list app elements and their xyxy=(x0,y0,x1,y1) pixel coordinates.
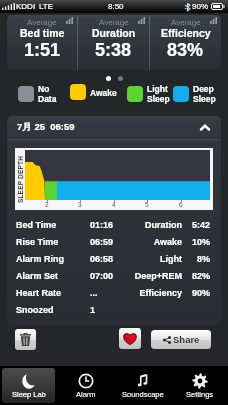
staticText: Snoozed xyxy=(16,305,54,315)
button[interactable]: Alarm xyxy=(59,368,112,403)
button[interactable]: Average xyxy=(7,15,77,70)
button[interactable]: Average xyxy=(78,15,149,70)
staticText: Awake xyxy=(90,88,117,97)
staticText: 8:50 xyxy=(108,2,124,11)
button[interactable]: Average xyxy=(150,15,221,70)
staticText: Sleep Lab xyxy=(12,390,46,398)
staticText: Soundscape xyxy=(122,390,164,398)
staticText: Average xyxy=(99,18,129,27)
staticText: 4 xyxy=(112,201,116,208)
staticText: Efficiency xyxy=(112,288,182,298)
staticText: Bed Time xyxy=(16,220,57,230)
button[interactable]: Light Sleep xyxy=(127,84,170,103)
staticText: 10% xyxy=(180,237,210,247)
staticText: 5:38 xyxy=(95,40,132,60)
staticText: 3 xyxy=(78,201,82,208)
staticText: Alarm xyxy=(76,390,96,398)
staticText: Deep+REM xyxy=(112,271,182,281)
button[interactable]: Deep Sleep xyxy=(173,84,216,103)
staticText: SLEEP DEPTH xyxy=(16,151,23,207)
button[interactable]: Soundscape xyxy=(116,368,169,403)
staticText: 90% xyxy=(192,2,209,11)
staticText: KDDI xyxy=(16,2,36,11)
staticText: Share xyxy=(173,334,200,345)
staticText: 07:00 xyxy=(90,271,114,281)
staticText: Light xyxy=(112,254,182,264)
staticText: 83% xyxy=(167,40,204,60)
button[interactable]: Sleep Lab xyxy=(2,368,55,403)
staticText: 6 xyxy=(179,201,183,208)
staticText: Settings xyxy=(186,390,214,398)
button[interactable]: Delete xyxy=(15,329,36,350)
staticText: Average xyxy=(27,18,57,27)
staticText: 5:42 xyxy=(180,220,210,230)
button[interactable]: Share xyxy=(151,330,211,349)
staticText: No Data xyxy=(38,84,57,103)
staticText: Bed time xyxy=(20,27,65,39)
staticText: 1:51 xyxy=(24,40,61,60)
staticText: 06:59 xyxy=(90,237,114,247)
staticText: Average xyxy=(171,18,201,27)
staticText: 01:16 xyxy=(90,220,114,230)
staticText: Deep Sleep xyxy=(193,84,216,103)
button[interactable]: Favorite xyxy=(119,328,141,349)
staticText: Light Sleep xyxy=(147,84,170,103)
staticText: Awake xyxy=(112,237,182,247)
staticText: LTE xyxy=(39,2,54,11)
staticText: Efficiency xyxy=(161,27,211,39)
staticText: Alarm Set xyxy=(16,271,59,281)
staticText: 2 xyxy=(45,201,49,208)
button[interactable]: 7月 25 06:59 xyxy=(7,116,221,138)
staticText: 1 xyxy=(90,305,96,315)
staticText: Duration xyxy=(92,27,136,39)
staticText: ... xyxy=(90,288,98,298)
staticText: Alarm Ring xyxy=(16,254,65,264)
other: Collapse xyxy=(200,124,210,131)
staticText: Heart Rate xyxy=(16,288,62,298)
staticText: Rise Time xyxy=(16,237,59,247)
staticText: 90% xyxy=(180,288,210,298)
staticText: 5 xyxy=(145,201,149,208)
staticText: 8% xyxy=(180,254,210,264)
staticText: 06:58 xyxy=(90,254,114,264)
button[interactable]: Settings xyxy=(173,368,226,403)
staticText: 7月 25 06:59 xyxy=(17,121,75,133)
staticText: 82% xyxy=(180,271,210,281)
staticText: Duration xyxy=(112,220,182,230)
button[interactable]: Awake xyxy=(70,84,117,100)
button[interactable]: No Data xyxy=(18,84,57,103)
